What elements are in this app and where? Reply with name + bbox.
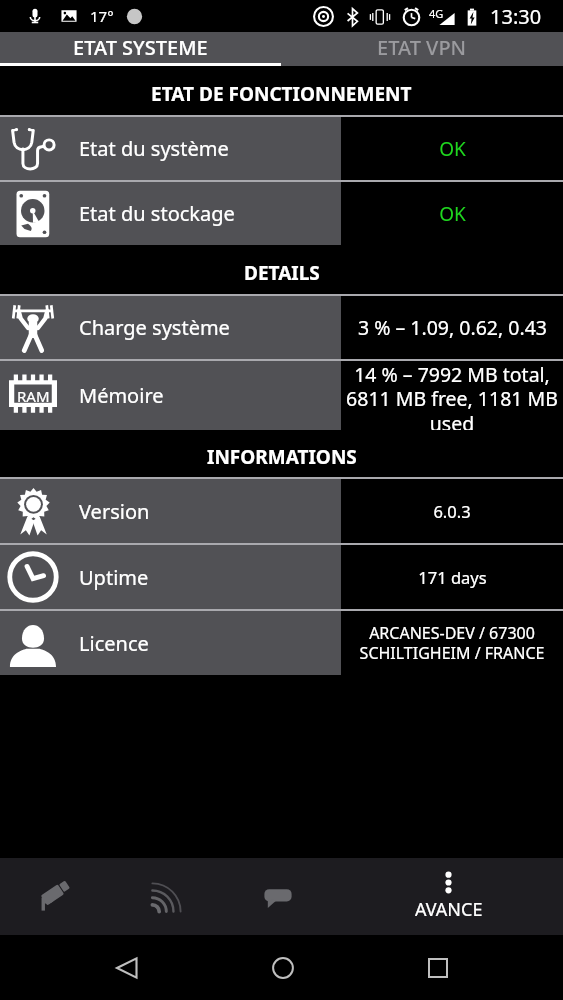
button[interactable]: Camera [0, 858, 111, 935]
staticText: OK [439, 136, 466, 162]
staticText: Charge système [79, 314, 230, 341]
staticText: OK [439, 201, 466, 227]
button[interactable]: Etat du stockage [0, 182, 563, 245]
staticText: Licence [79, 630, 149, 657]
staticText: ETAT SYSTEME [73, 34, 208, 61]
staticText: DETAILS [244, 260, 320, 286]
staticText: 6.0.3 [433, 500, 471, 522]
button[interactable]: AVANCE [334, 858, 563, 935]
button[interactable]: Messages [222, 858, 334, 935]
button[interactable]: Home [205, 935, 360, 1000]
staticText: INFORMATIONS [207, 444, 357, 470]
button[interactable]: Licence [0, 611, 563, 675]
button[interactable]: Uptime [0, 545, 563, 609]
staticText: ARCANES-DEV / 67300 SCHILTIGHEIM / FRANC… [346, 622, 558, 664]
staticText: Uptime [79, 564, 149, 591]
staticText: 14 % – 7992 MB total, 6811 MB free, 1181… [346, 361, 558, 430]
button[interactable]: Recents [360, 935, 515, 1000]
button[interactable]: Back [50, 935, 205, 1000]
staticText: ETAT DE FONCTIONNEMENT [151, 81, 412, 107]
button[interactable]: Version [0, 479, 563, 543]
staticText: Etat du système [79, 135, 229, 162]
staticText: 171 days [418, 566, 487, 588]
button[interactable]: Signal [111, 858, 222, 935]
staticText: ETAT VPN [377, 34, 467, 61]
staticText: 4G [429, 6, 444, 21]
staticText: Version [79, 498, 150, 525]
button[interactable]: Etat du système [0, 117, 563, 180]
button[interactable]: Charge système [0, 296, 563, 359]
staticText: AVANCE [415, 897, 483, 922]
staticText: 17° [90, 6, 114, 26]
staticText: 13:30 [490, 3, 542, 30]
button[interactable]: RAM [0, 361, 563, 430]
staticText: 3 % – 1.09, 0.62, 0.43 [358, 314, 547, 341]
button[interactable]: ETAT SYSTEME [0, 32, 281, 63]
staticText: Etat du stockage [79, 200, 235, 227]
button[interactable]: ETAT VPN [281, 32, 563, 63]
staticText: Mémoire [79, 382, 164, 409]
staticText: RAM [17, 386, 50, 406]
